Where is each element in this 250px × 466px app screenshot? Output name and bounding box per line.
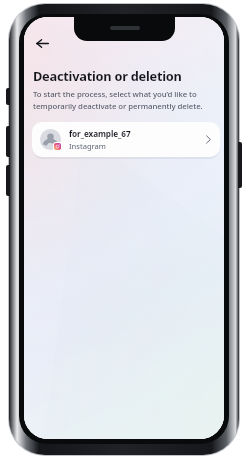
staticText: Instagram	[69, 141, 106, 151]
staticText: To start the process, select what you’d …	[33, 89, 203, 111]
button[interactable]: Back	[28, 29, 56, 57]
staticText: Deactivation or deletion	[33, 67, 182, 84]
staticText: for_example_67	[69, 128, 131, 139]
button[interactable]: for_example_67	[32, 122, 220, 157]
